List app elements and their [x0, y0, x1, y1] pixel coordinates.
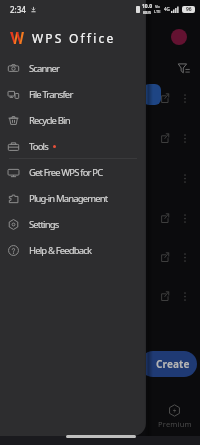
- button[interactable]: More options: [182, 252, 188, 263]
- staticText: Get Free WPS for PC: [29, 166, 103, 179]
- button[interactable]: File Transfer: [0, 81, 146, 107]
- button[interactable]: Scanner: [0, 55, 146, 81]
- staticText: Tools: [29, 140, 48, 153]
- button[interactable]: Share: [161, 93, 169, 103]
- button[interactable]: Premium: [155, 404, 194, 429]
- staticText: Plug-in Management: [29, 192, 108, 205]
- button[interactable]: Profile: [171, 29, 187, 45]
- button[interactable]: More options: [182, 213, 188, 224]
- staticText: Scanner: [29, 62, 60, 75]
- staticText: 2:34: [10, 4, 26, 15]
- button[interactable]: Help & Feedback: [0, 237, 146, 263]
- staticText: 96: [186, 6, 192, 13]
- staticText: Recycle Bin: [29, 114, 70, 127]
- button[interactable]: Get Free WPS for PC: [0, 159, 146, 185]
- staticText: Create: [156, 357, 190, 371]
- button[interactable]: Tools: [0, 133, 146, 159]
- button[interactable]: More options: [182, 93, 188, 104]
- button[interactable]: Recycle Bin: [0, 107, 146, 133]
- button[interactable]: Plug-in Management: [0, 185, 146, 211]
- button[interactable]: More options: [182, 173, 188, 184]
- staticText: File Transfer: [29, 88, 73, 101]
- button[interactable]: Share: [161, 213, 169, 223]
- staticText: 4G: [164, 6, 170, 12]
- button[interactable]: Filter: [178, 62, 190, 74]
- button[interactable]: More options: [182, 291, 188, 302]
- staticText: Help & Feedback: [29, 244, 92, 257]
- staticText: LTE: [154, 9, 161, 14]
- button[interactable]: Share: [161, 291, 169, 301]
- button[interactable]: More options: [182, 133, 188, 144]
- staticText: Vo: [155, 4, 160, 9]
- button[interactable]: Create: [140, 351, 197, 377]
- staticText: Settings: [29, 218, 59, 231]
- staticText: KB/S: [143, 10, 152, 15]
- button[interactable]: Share: [161, 252, 169, 262]
- staticText: Premium: [158, 419, 192, 429]
- button[interactable]: [143, 84, 161, 105]
- button[interactable]: Share: [161, 133, 169, 143]
- staticText: WPS Office: [32, 30, 116, 46]
- button[interactable]: Settings: [0, 211, 146, 237]
- staticText: 10.0: [142, 3, 152, 10]
